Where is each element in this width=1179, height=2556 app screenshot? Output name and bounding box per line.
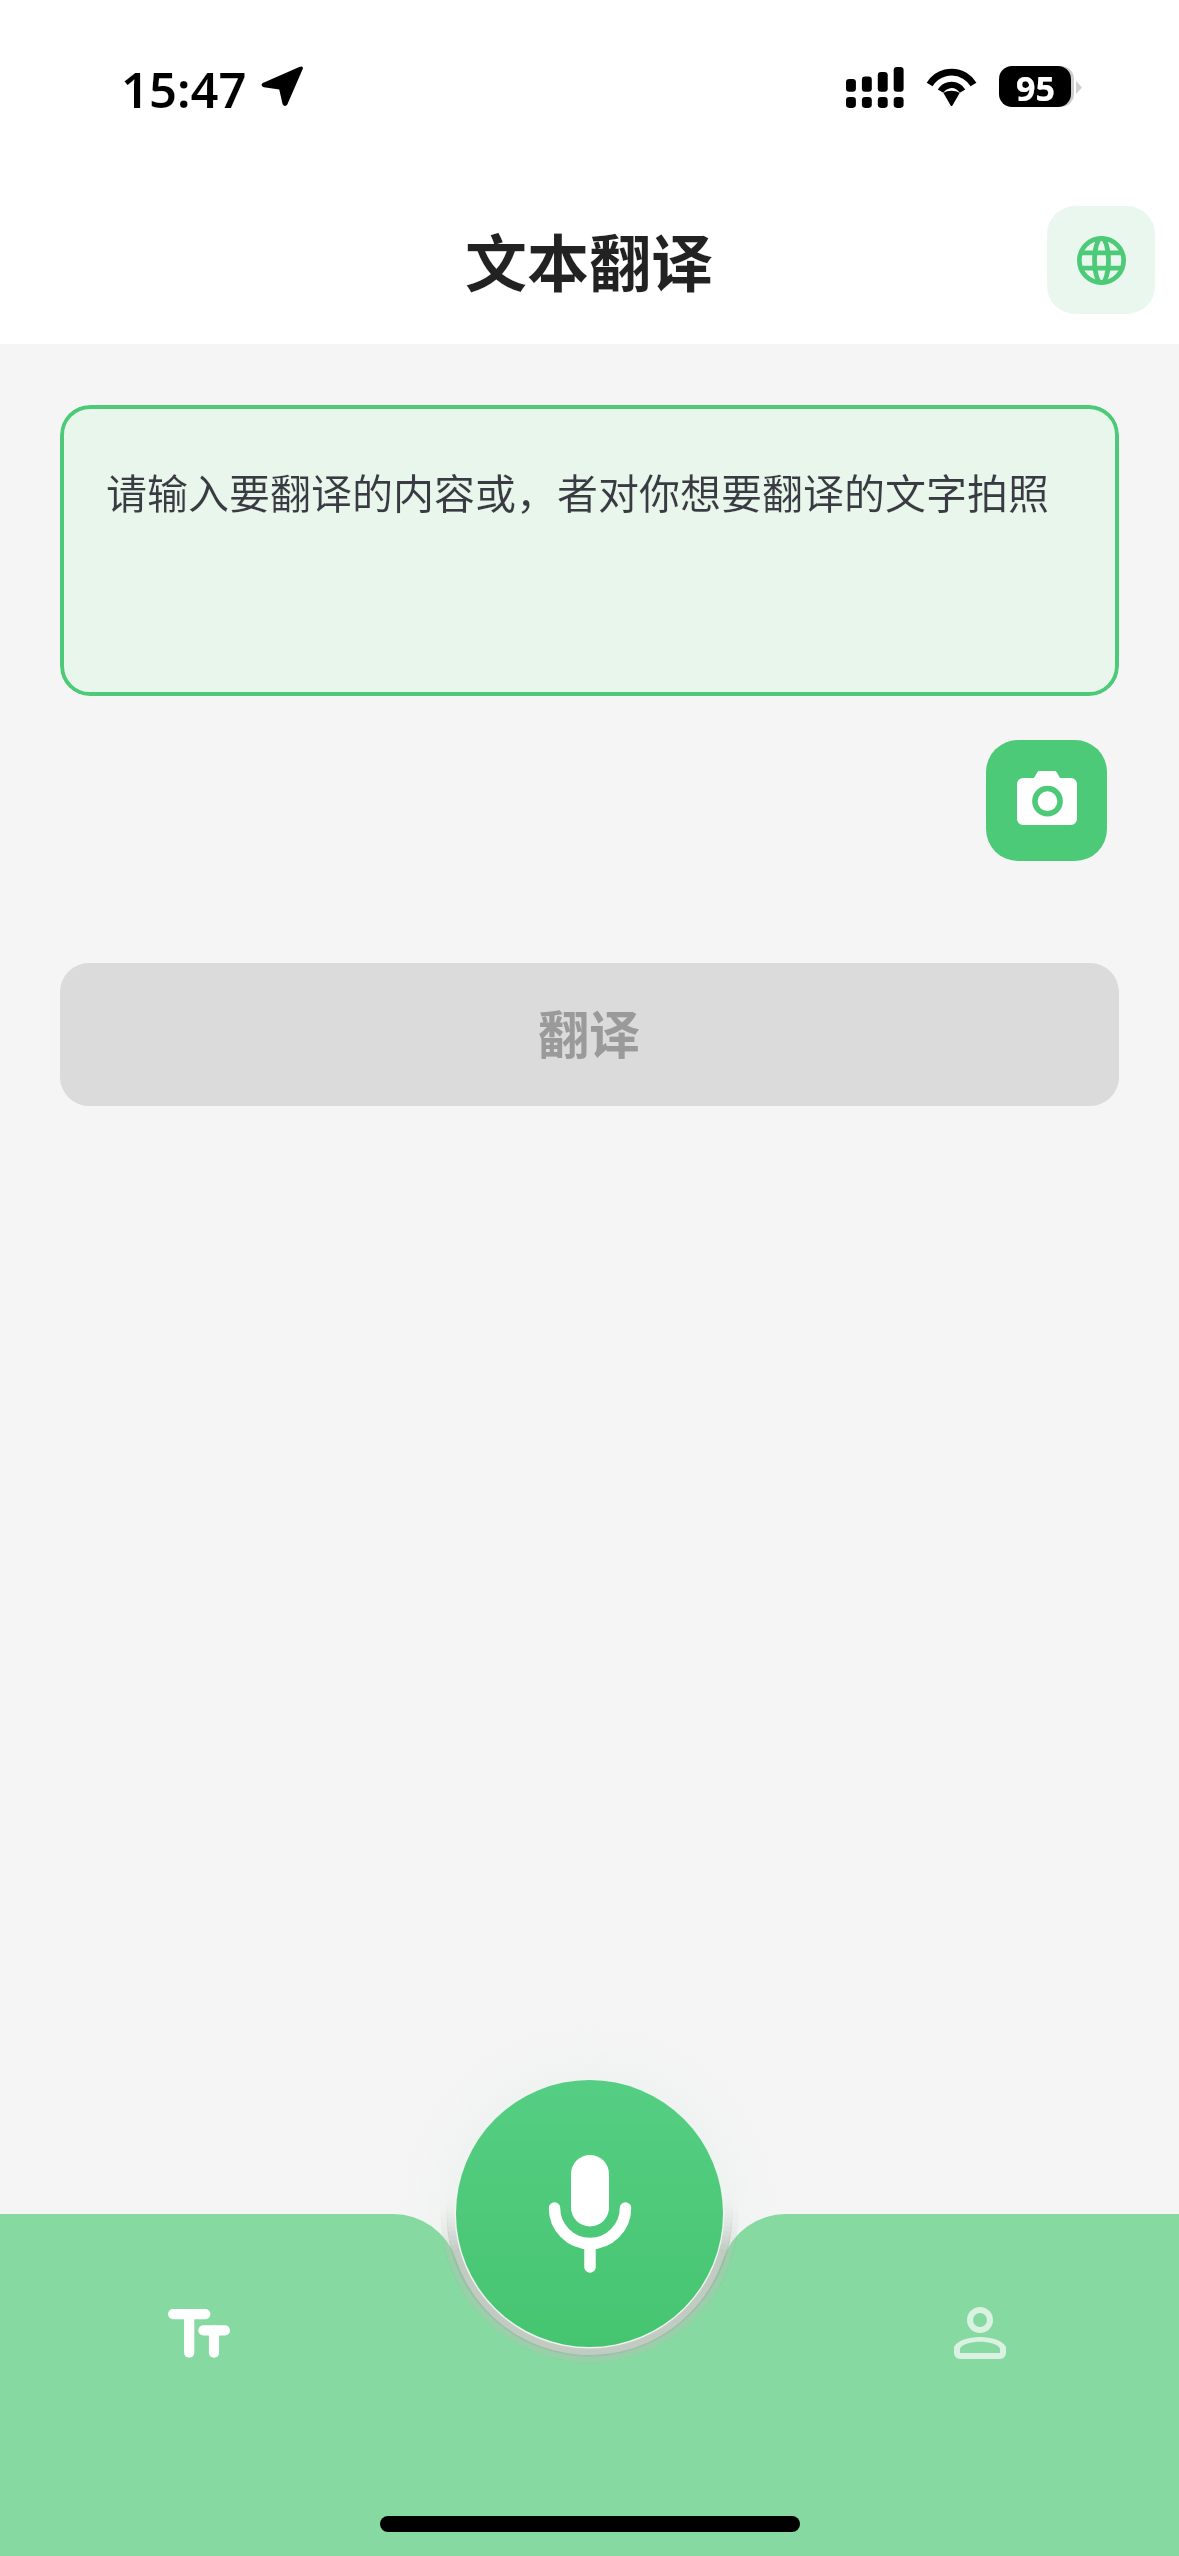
- button[interactable]: Text: [89, 2228, 309, 2438]
- button[interactable]: 翻译: [60, 963, 1119, 1106]
- staticText: 文本翻译: [465, 215, 714, 305]
- staticText: 请输入要翻译的内容或，者对你想要翻译的文字拍照: [106, 461, 1049, 520]
- staticText: 翻译: [538, 995, 641, 1069]
- button[interactable]: Voice input: [456, 2080, 723, 2347]
- button[interactable]: Profile: [870, 2228, 1090, 2438]
- button[interactable]: Camera: [986, 740, 1107, 861]
- button[interactable]: Language: [1047, 206, 1155, 314]
- staticText: 95: [1016, 66, 1055, 106]
- button[interactable]: 请输入要翻译的内容或，者对你想要翻译的文字拍照: [60, 405, 1119, 696]
- staticText: 15:47: [121, 56, 247, 123]
